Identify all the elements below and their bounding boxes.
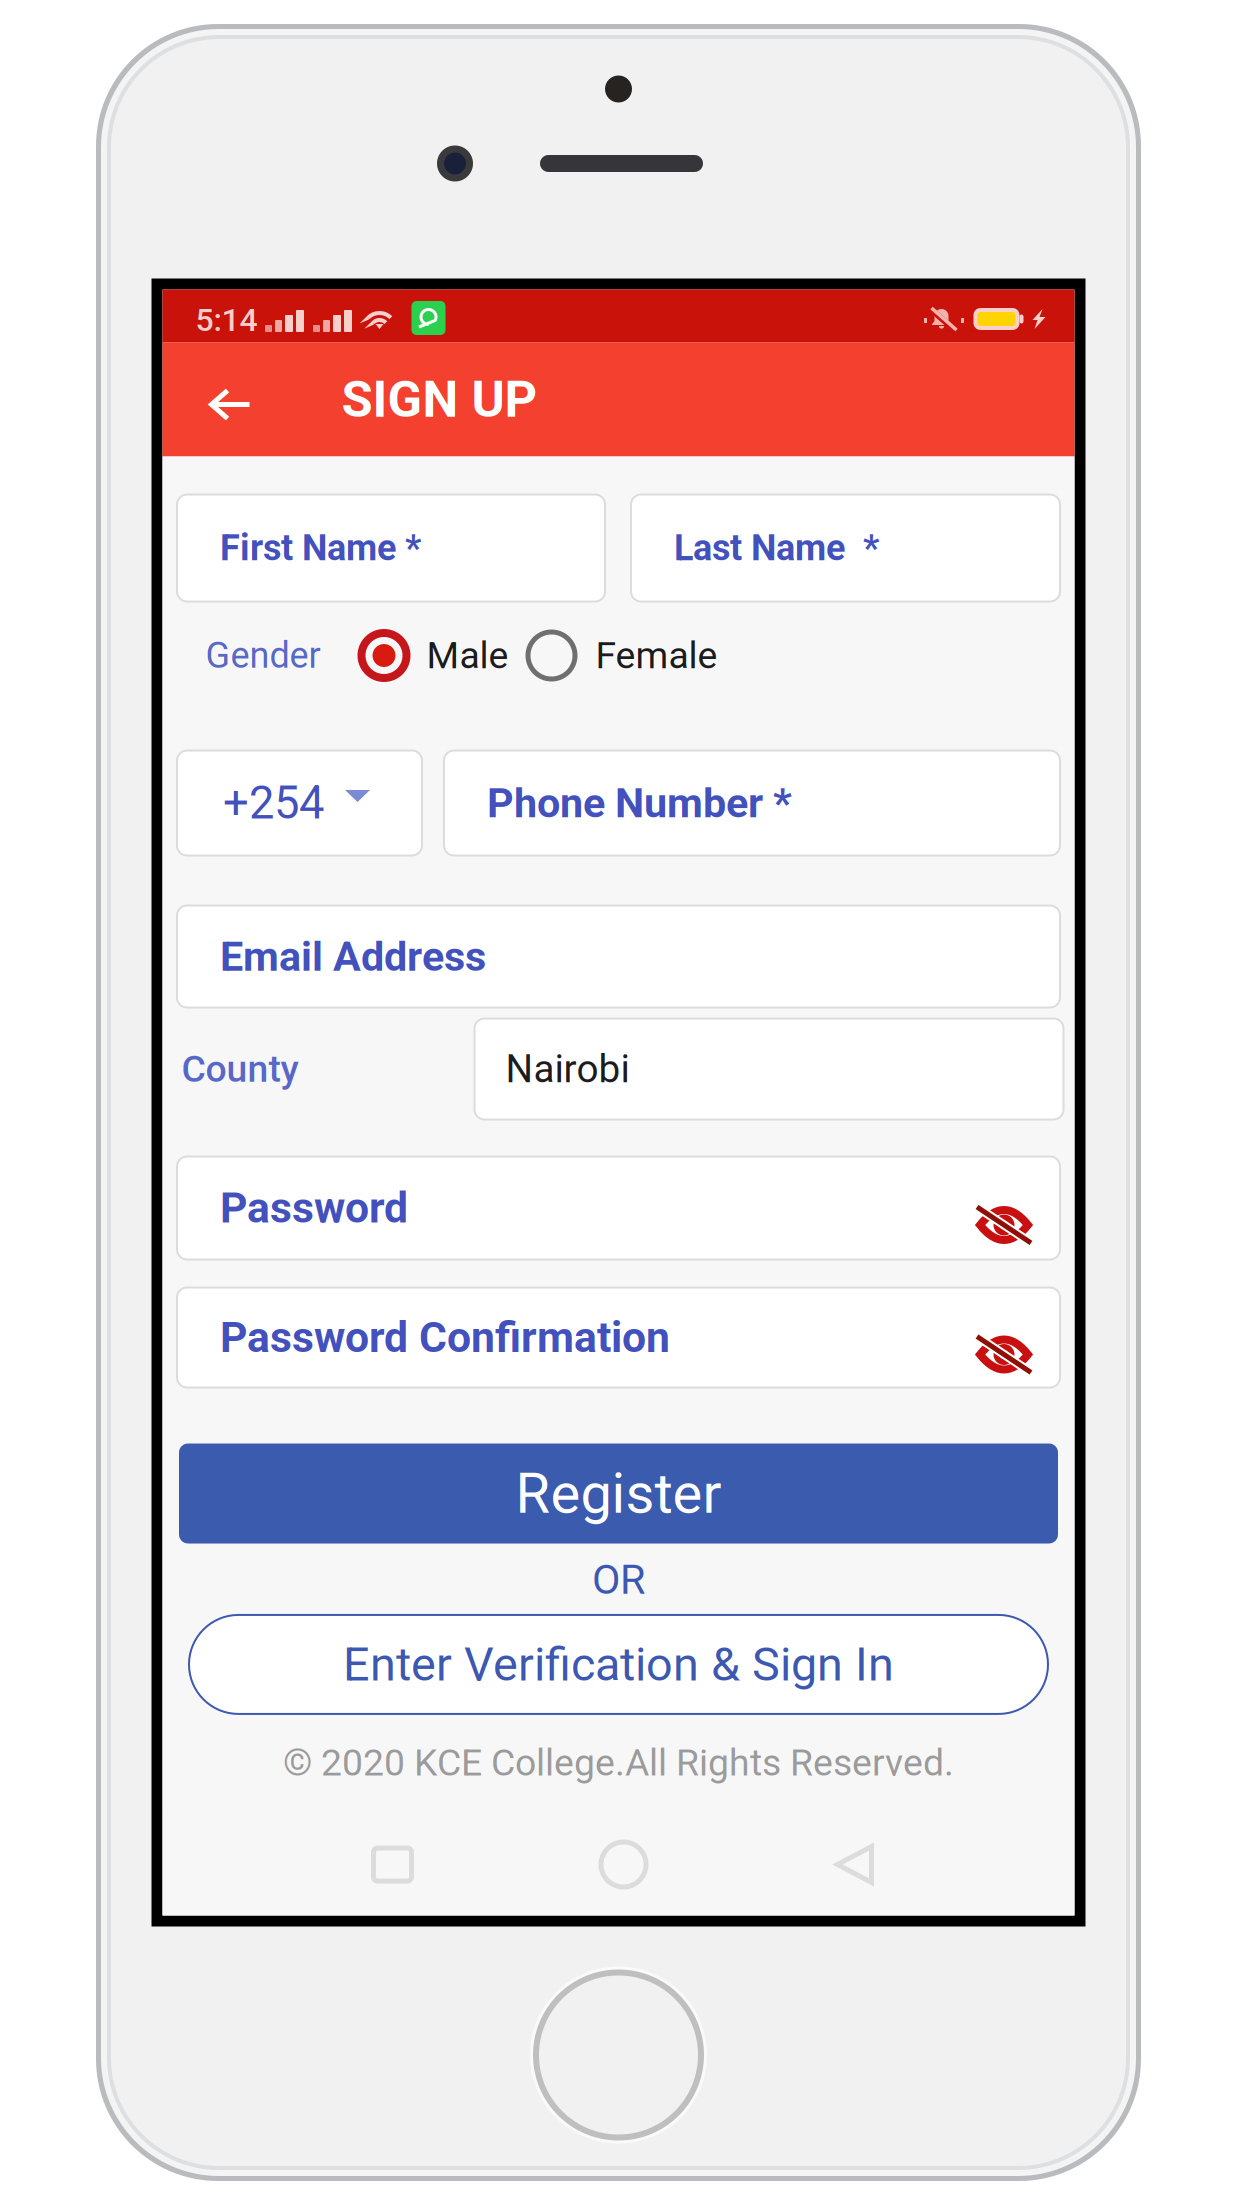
staticText: Male [426,634,508,677]
staticText: Enter Verification & Sign In [343,1637,894,1692]
button[interactable]: Password [177,1156,1060,1259]
button[interactable]: Back [792,1813,916,1915]
button[interactable]: Phone Number * [444,750,1060,855]
staticText: SIGN UP [341,370,537,429]
button[interactable]: First Name * [177,494,605,601]
button[interactable]: Email Address [177,905,1060,1007]
button[interactable]: +254 [177,750,422,855]
button[interactable]: Register [179,1443,1058,1543]
staticText: OR [592,1555,645,1604]
staticText: Nairobi [505,1046,629,1092]
staticText: 5:14 [195,301,257,339]
staticText: County [181,1047,298,1091]
button[interactable]: Back [162,342,298,456]
button[interactable]: Enter Verification & Sign In [189,1615,1048,1714]
staticText: Password [220,1183,408,1233]
button[interactable]: Home [561,1813,685,1915]
button[interactable]: Password Confirmation [177,1287,1060,1387]
staticText: Phone Number * [487,779,792,827]
button[interactable]: Recents [330,1813,454,1915]
staticText: Female [595,634,717,677]
staticText: Password Confirmation [220,1312,670,1362]
staticText: +254 [223,776,324,829]
button[interactable]: Female [525,629,717,681]
staticText: First Name * [220,527,421,569]
button[interactable]: Nairobi [474,1018,1063,1119]
staticText: Email Address [220,932,486,981]
staticText: Register [515,1461,721,1526]
button[interactable]: Last Name * [631,494,1060,601]
staticText: © 2020 KCE College.All Rights Reserved. [283,1741,954,1785]
staticText: Last Name * [674,527,879,569]
staticText: Gender [205,634,320,677]
button[interactable]: Male [357,629,508,682]
